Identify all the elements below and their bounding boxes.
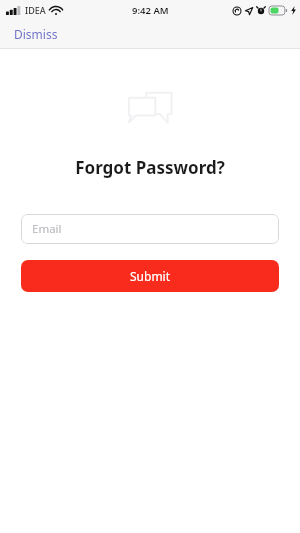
button[interactable]: Email	[21, 214, 279, 244]
staticText: IDEA	[25, 4, 46, 16]
staticText: Dismiss	[14, 26, 58, 42]
staticText: Email	[32, 221, 62, 237]
button[interactable]: Dismiss	[0, 22, 72, 46]
staticText: Forgot Password?	[75, 156, 225, 179]
other: Messages	[128, 91, 172, 125]
staticText: 9:42 AM	[132, 4, 169, 17]
button[interactable]: Submit	[21, 260, 279, 292]
staticText: Submit	[130, 268, 171, 284]
